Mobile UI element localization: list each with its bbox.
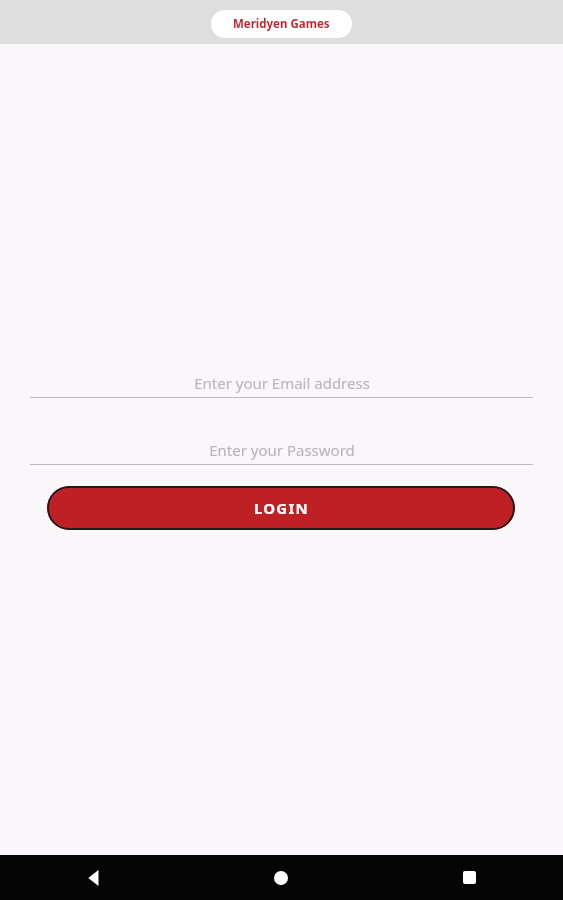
button[interactable]: Home <box>187 855 375 900</box>
button[interactable]: Back <box>0 855 187 900</box>
button[interactable]: Enter your Password <box>30 437 533 465</box>
staticText: Enter your Password <box>209 440 355 460</box>
button[interactable]: Meridyen Games <box>211 10 352 38</box>
button[interactable]: Recent apps <box>375 855 563 900</box>
staticText: Enter your Email address <box>194 373 370 393</box>
button[interactable]: LOGIN <box>47 486 515 530</box>
staticText: LOGIN <box>254 498 309 518</box>
button[interactable]: Enter your Email address <box>30 370 533 398</box>
staticText: Meridyen Games <box>233 16 330 32</box>
